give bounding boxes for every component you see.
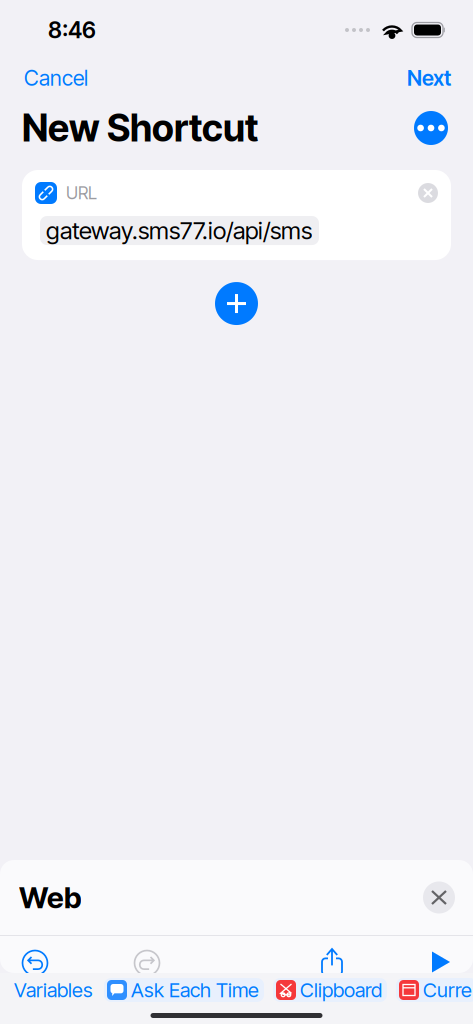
staticText: Curre [423,978,472,1002]
button[interactable]: Share [301,949,363,975]
button[interactable]: Clipboard [273,978,387,1002]
staticText: Variables [14,978,93,1002]
staticText: Ask Each Time [131,978,259,1002]
button[interactable]: Curre [396,978,473,1002]
staticText: URL [66,182,97,203]
staticText: Web [19,880,82,915]
button[interactable]: Close [423,881,455,913]
button[interactable]: Run [409,951,473,972]
staticText: Next [407,65,451,91]
button[interactable]: Ask Each Time [104,978,264,1002]
button[interactable]: Next [404,59,454,97]
staticText: New Shortcut [22,105,258,151]
button[interactable]: Add action [215,282,258,325]
button[interactable]: More options [414,111,448,145]
staticText: Clipboard [300,978,382,1002]
button[interactable]: Variables [12,974,95,1006]
button[interactable]: Remove action [418,183,438,203]
button[interactable]: Redo [70,950,224,973]
staticText: Cancel [24,65,88,91]
staticText: 8:46 [48,16,96,44]
button[interactable]: Cancel [21,59,91,97]
button[interactable]: Undo [0,950,70,973]
staticText: gateway.sms77.io/api/sms [46,216,312,245]
